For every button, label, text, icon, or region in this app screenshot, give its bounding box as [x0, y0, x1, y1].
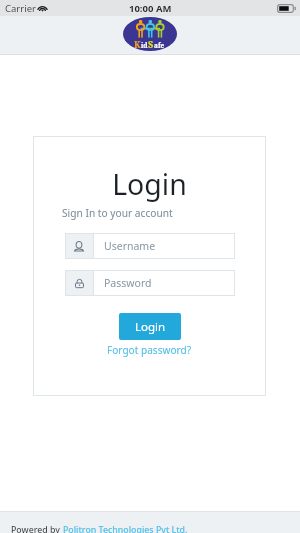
staticText: afe: [154, 41, 165, 50]
staticText: Carrier: [5, 2, 36, 15]
staticText: K: [134, 38, 141, 50]
staticText: Username: [104, 239, 156, 253]
staticText: Login: [135, 319, 166, 335]
staticText: Password: [104, 276, 152, 290]
staticText: id: [141, 41, 148, 50]
staticText: 10:00 AM: [129, 2, 172, 15]
button[interactable]: Password: [65, 270, 235, 296]
button[interactable]: Username: [65, 233, 235, 259]
button[interactable]: Politron Technologies Pvt Ltd.: [63, 524, 188, 533]
staticText: Sign In to your account: [62, 206, 173, 220]
staticText: Powered by: [11, 524, 63, 533]
button[interactable]: Login: [119, 313, 181, 340]
button[interactable]: Forgot password?: [105, 342, 194, 358]
staticText: Login: [33, 165, 266, 204]
staticText: S: [148, 38, 154, 50]
